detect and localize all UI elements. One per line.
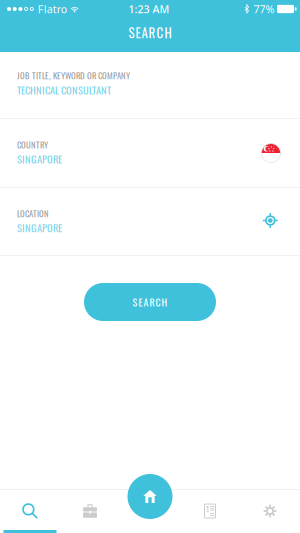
button[interactable]: Search [0, 489, 60, 533]
staticText: 77% [253, 2, 274, 16]
button[interactable]: LOCATION [0, 188, 300, 255]
button[interactable]: Settings [240, 489, 300, 533]
staticText: 1:23 AM [128, 2, 169, 16]
button[interactable]: Home [127, 474, 172, 519]
staticText: Flatro [38, 2, 67, 16]
button[interactable]: Jobs [60, 489, 120, 533]
button[interactable]: Applications [180, 489, 240, 533]
staticText: S E A R C H [132, 294, 167, 309]
staticText: TECHNICAL CONSULTANT [17, 82, 111, 97]
staticText: COUNTRY [17, 138, 48, 151]
button[interactable]: JOB TITLE, KEYWORD OR COMPANY [0, 52, 300, 118]
staticText: JOB TITLE, KEYWORD OR COMPANY [17, 69, 130, 82]
button[interactable]: S E A R C H [84, 283, 216, 321]
staticText: S E A R C H [128, 23, 171, 42]
button[interactable]: COUNTRY [0, 119, 300, 187]
staticText: SINGAPORE [17, 151, 62, 167]
staticText: LOCATION [17, 207, 49, 220]
staticText: SINGAPORE [17, 220, 62, 235]
button[interactable]: Home placeholder [120, 489, 180, 533]
